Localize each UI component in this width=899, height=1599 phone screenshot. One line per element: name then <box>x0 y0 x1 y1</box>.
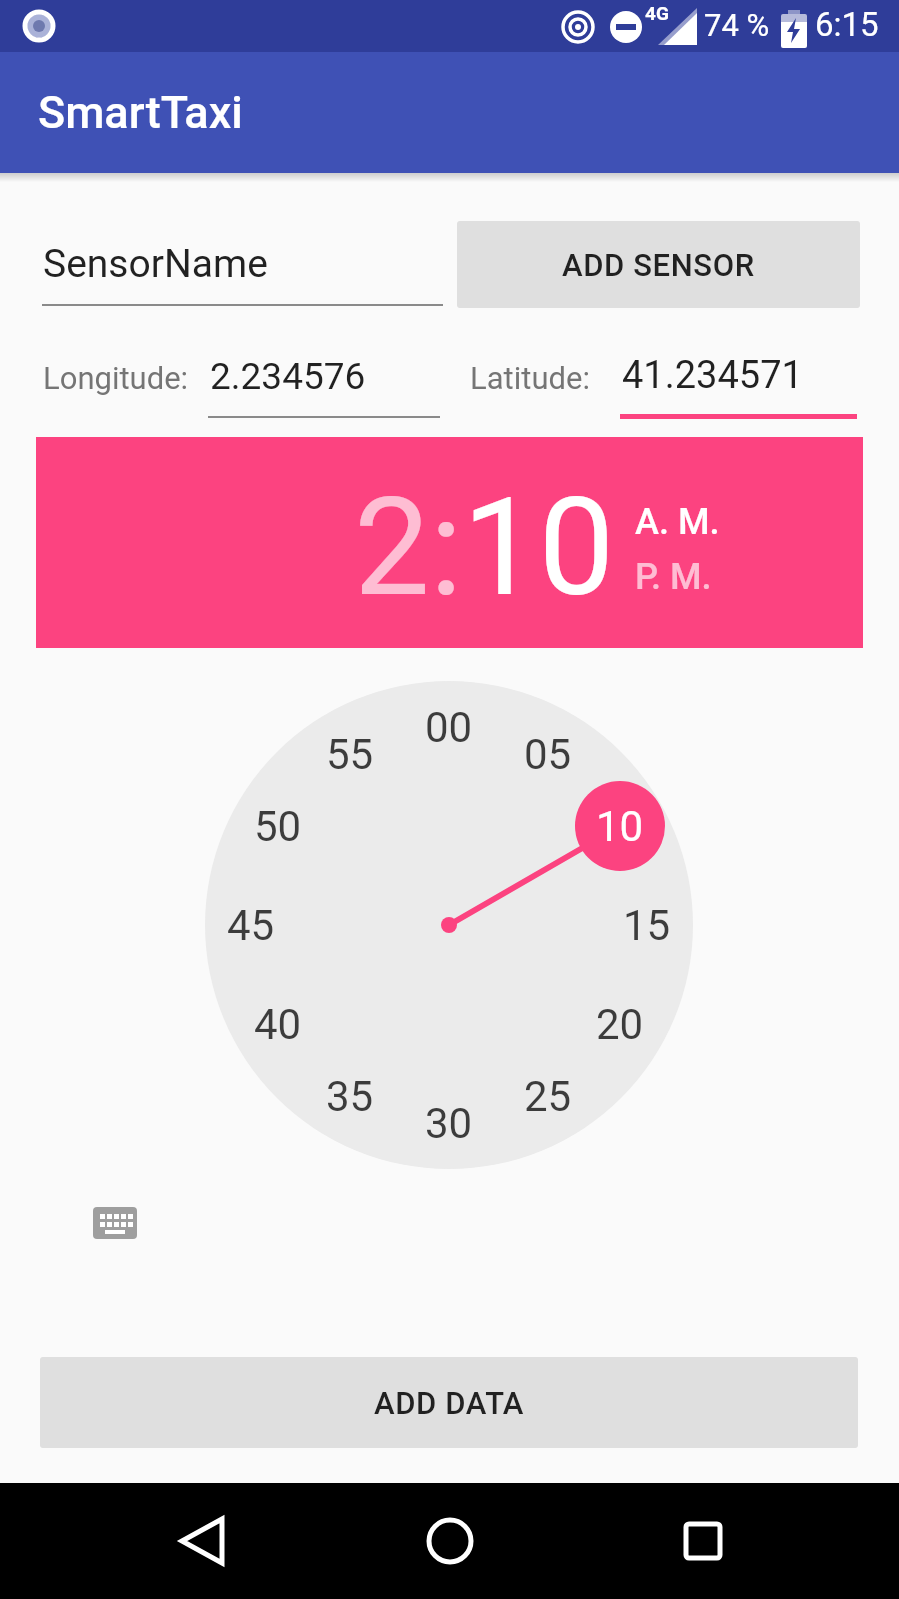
button[interactable] <box>160 1501 240 1581</box>
staticText: 05 <box>524 730 572 779</box>
staticText: ADD SENSOR <box>562 247 755 283</box>
button[interactable]: P. M. <box>635 556 727 602</box>
staticText: 00 <box>425 703 473 752</box>
staticText: 30 <box>425 1099 473 1148</box>
staticText: A. M. <box>635 501 720 543</box>
staticText: 2:10 <box>354 469 615 627</box>
staticText: 20 <box>596 1000 644 1049</box>
staticText: Latitude: <box>470 360 590 396</box>
staticText: SensorName <box>43 241 268 287</box>
staticText: Longitude: <box>43 360 189 396</box>
staticText: 10 <box>596 802 644 851</box>
staticText: 40 <box>254 1000 302 1049</box>
button[interactable] <box>663 1501 743 1581</box>
staticText: 45 <box>227 901 275 950</box>
button[interactable]: A. M. <box>635 501 727 547</box>
staticText: P. M. <box>635 556 712 598</box>
button[interactable] <box>410 1501 490 1581</box>
button[interactable]: 10 <box>575 781 665 871</box>
staticText: 74 % <box>704 7 770 43</box>
staticText: 41.234571 <box>622 353 803 398</box>
staticText: SmartTaxi <box>38 86 243 139</box>
staticText: 35 <box>326 1072 374 1121</box>
staticText: 25 <box>524 1072 572 1121</box>
button[interactable]: ADD SENSOR <box>457 221 860 308</box>
staticText: 15 <box>623 901 671 950</box>
staticText: 2.234576 <box>210 355 366 398</box>
button[interactable] <box>93 1207 137 1239</box>
staticText: 6:15 <box>815 5 879 44</box>
staticText: 4G <box>645 2 669 24</box>
staticText: ADD DATA <box>374 1385 525 1421</box>
staticText: 55 <box>326 730 374 779</box>
staticText: 50 <box>254 802 302 851</box>
button[interactable]: ADD DATA <box>40 1357 858 1448</box>
